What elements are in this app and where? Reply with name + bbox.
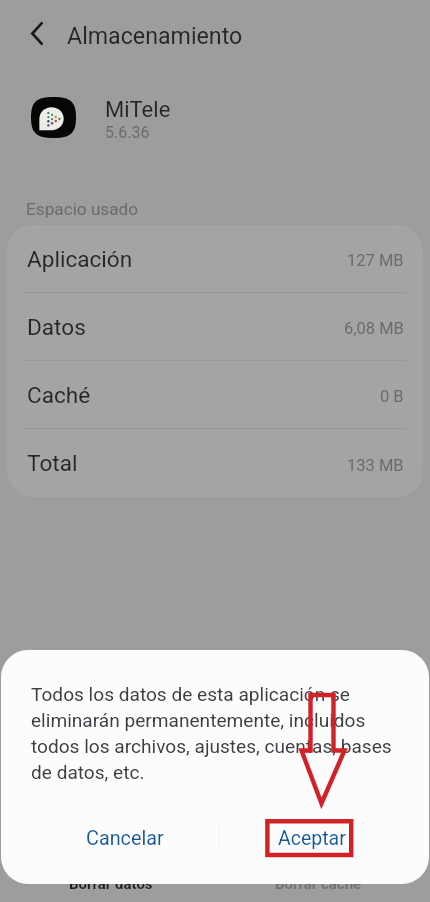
staticText: 0 B (380, 387, 404, 406)
staticText: Todos los datos de esta aplicación se el… (31, 683, 395, 784)
staticText: MiTele (105, 97, 171, 123)
staticText: Borrar datos (69, 875, 153, 893)
staticText: Total (27, 450, 78, 476)
button[interactable]: Aceptar (217, 813, 407, 863)
staticText: Aplicación (27, 246, 133, 272)
button[interactable]: Borrar datos (0, 865, 215, 902)
staticText: 5.6.36 (105, 123, 150, 142)
staticText: Borrar caché (275, 875, 362, 893)
staticText: Caché (27, 382, 91, 408)
staticText: Espacio usado (26, 199, 139, 219)
staticText: Aceptar (278, 827, 346, 850)
staticText: 6,08 MB (344, 319, 404, 338)
button[interactable]: Aplicación (7, 225, 423, 293)
button[interactable]: Cancelar (30, 813, 220, 863)
button[interactable]: Total (7, 429, 423, 497)
button[interactable]: Borrar caché (215, 865, 430, 902)
button[interactable]: Caché (7, 361, 423, 429)
staticText: 127 MB (347, 251, 404, 270)
staticText: Almacenamiento (67, 22, 243, 49)
button[interactable]: Back (13, 9, 61, 57)
staticText: 133 MB (347, 456, 404, 475)
staticText: Cancelar (86, 827, 164, 850)
button[interactable]: Datos (7, 293, 423, 361)
staticText: Datos (27, 314, 86, 340)
